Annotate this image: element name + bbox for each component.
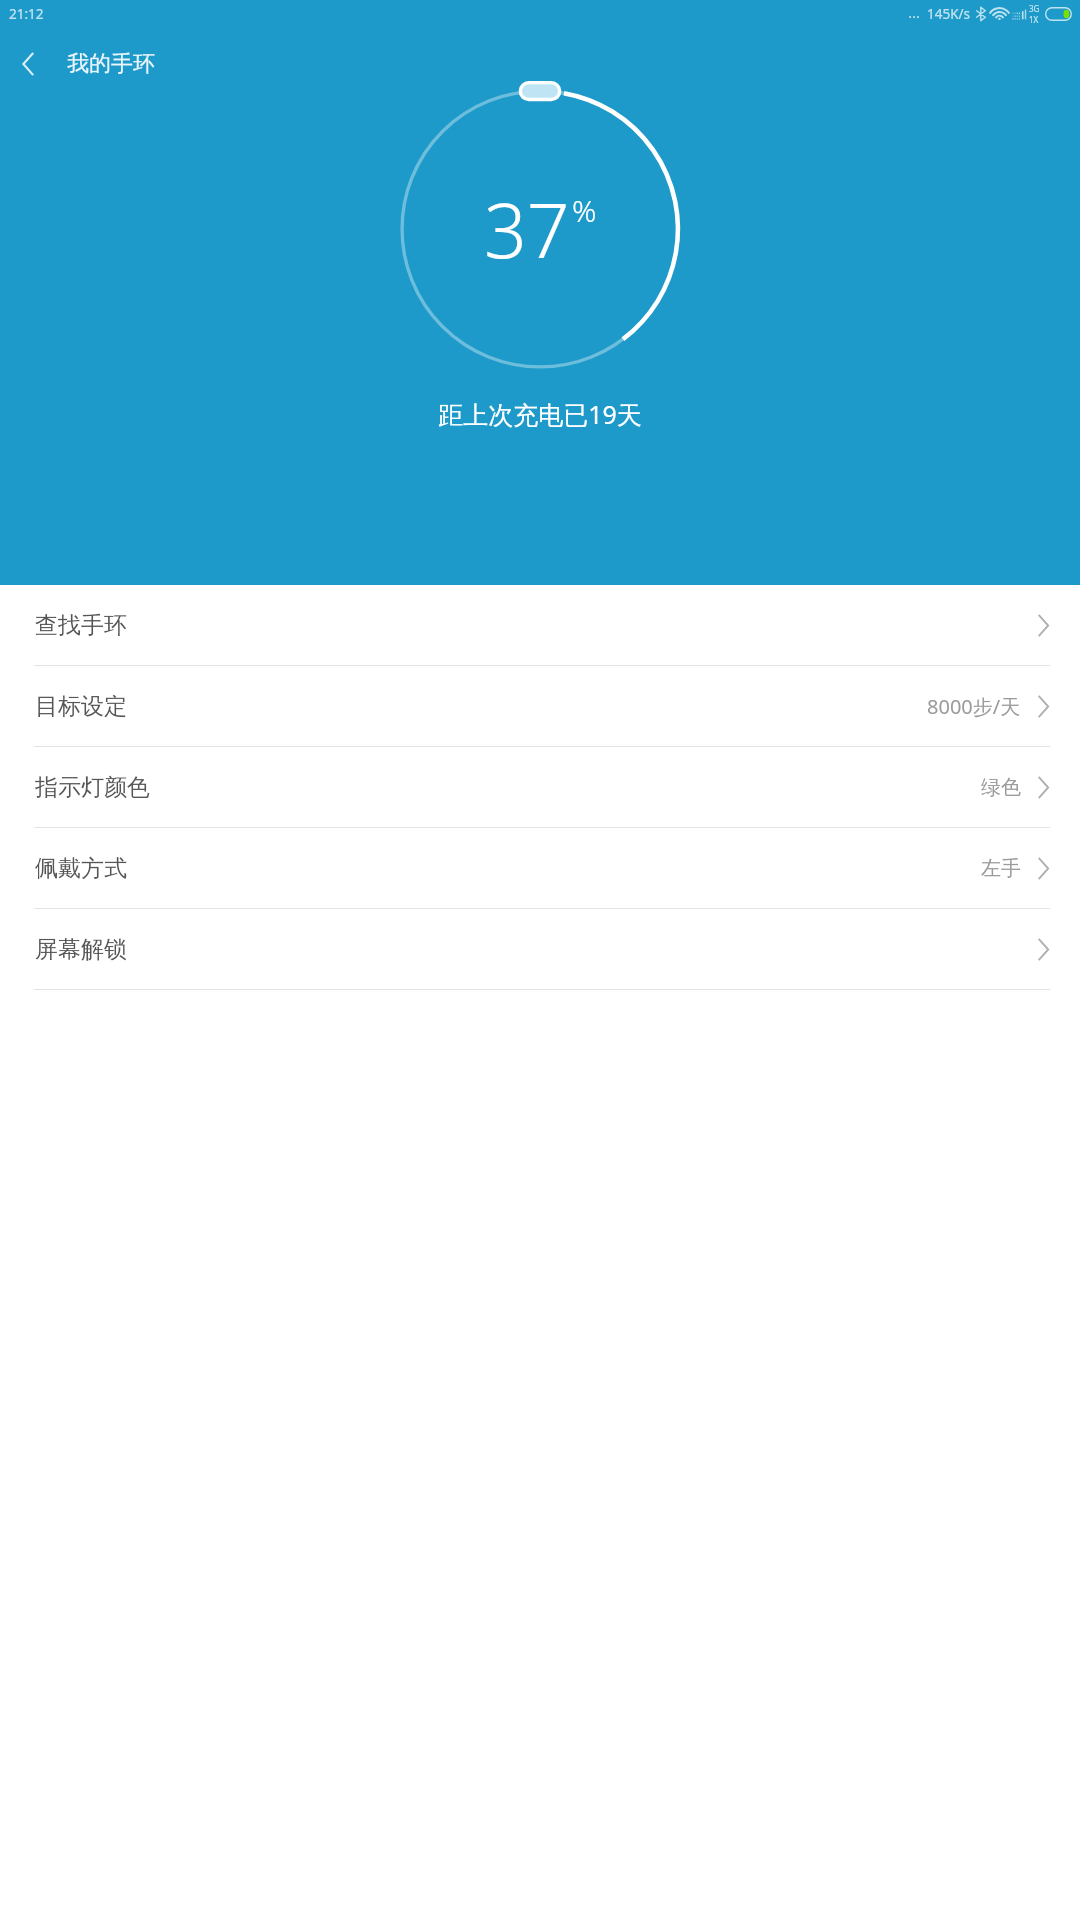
staticText: 指示灯颜色 — [35, 773, 150, 802]
button[interactable]: 目标设定 — [0, 666, 1080, 746]
button[interactable]: 佩戴方式 — [0, 828, 1080, 908]
staticText: 37 — [484, 178, 570, 280]
button[interactable]: 查找手环 — [0, 585, 1080, 665]
staticText: 佩戴方式 — [35, 854, 127, 883]
staticText: 距上次充电已19天 — [438, 397, 642, 431]
button[interactable]: 指示灯颜色 — [0, 747, 1080, 827]
staticText: 查找手环 — [35, 611, 127, 640]
staticText: 我的手环 — [67, 50, 155, 78]
staticText: 145K/s — [927, 5, 971, 23]
staticText: 绿色 — [981, 775, 1021, 800]
staticText: 21:12 — [9, 5, 44, 23]
button[interactable]: 屏幕解锁 — [0, 909, 1080, 989]
button[interactable]: Back — [0, 36, 56, 92]
staticText: 目标设定 — [35, 692, 127, 721]
staticText: 屏幕解锁 — [35, 935, 127, 964]
staticText: 1X — [1029, 14, 1039, 25]
staticText: 左手 — [981, 856, 1021, 881]
staticText: 3G — [1029, 3, 1040, 14]
staticText: 8000步/天 — [927, 693, 1021, 720]
staticText: % — [572, 190, 597, 231]
